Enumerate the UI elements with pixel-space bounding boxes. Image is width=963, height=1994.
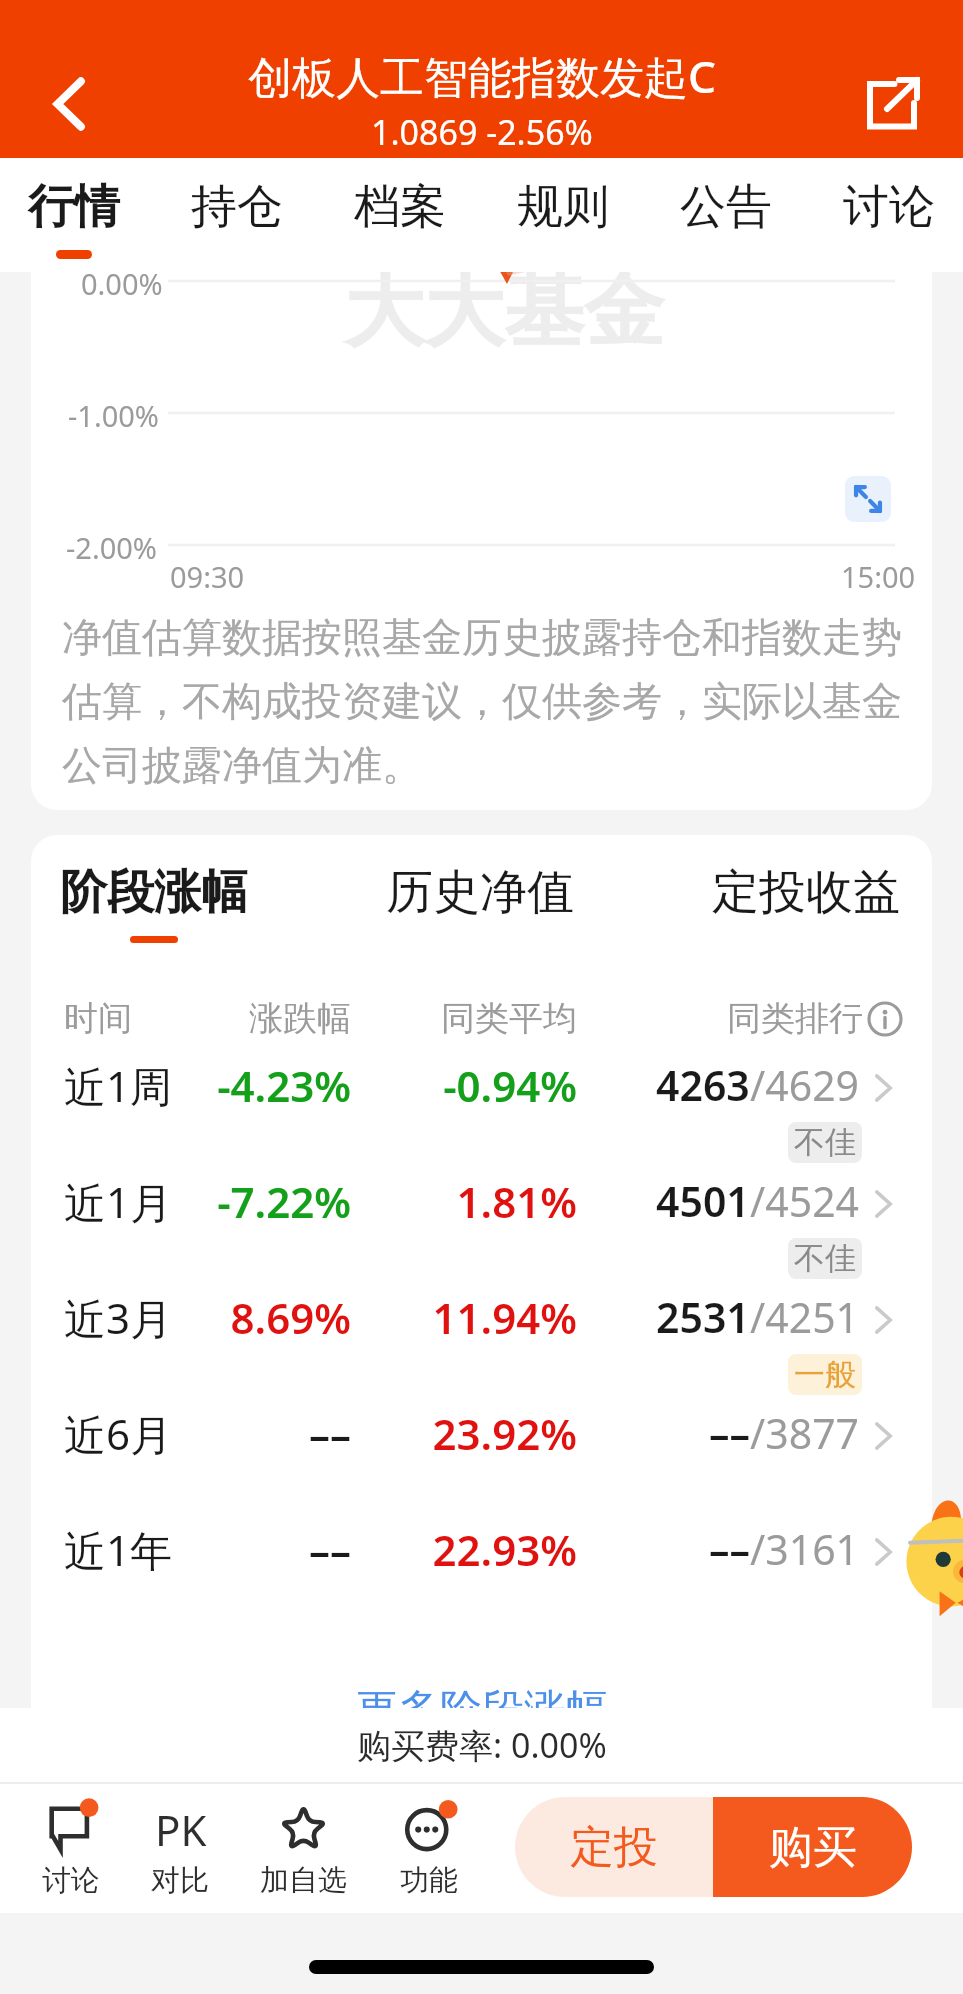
staticText: 净值估算数据按照基金历史披露持仓和指数走势估算，不构成投资建议，仅供参考，实际以… [62,612,902,791]
staticText: –– [31,1405,351,1462]
button[interactable]: 行情 [0,158,154,272]
staticText: 近6月 [64,1405,173,1462]
staticText: 更多阶段涨幅 [356,1684,608,1737]
button[interactable]: 公告 [646,158,806,272]
staticText: 讨论 [843,178,935,236]
button[interactable]: 档案 [320,158,480,272]
staticText: /3161 [750,1521,860,1577]
staticText: PK [155,1801,207,1856]
staticText: 8.69% [31,1289,351,1346]
button[interactable]: Back [21,56,117,152]
staticText: 近1月 [64,1173,173,1230]
button[interactable]: 购买 [713,1797,912,1897]
staticText: 4501 [656,1173,750,1229]
staticText: 持仓 [191,178,283,236]
staticText: 15:00 [841,557,916,596]
staticText: /3877 [750,1405,860,1461]
staticText: -2.00% [66,528,157,567]
button[interactable]: Share [847,59,937,149]
button[interactable]: 讨论 [809,158,963,272]
staticText: 定投 [570,1820,658,1875]
button[interactable]: 讨论 [11,1782,131,1913]
staticText: 0.00% [81,272,163,303]
staticText: 1.81% [31,1173,577,1230]
staticText: 近1年 [64,1521,173,1578]
staticText: 讨论 [42,1862,100,1899]
staticText: 不佳 [794,1123,856,1162]
staticText: 行情 [28,178,120,236]
staticText: 同类排行 [727,997,863,1040]
staticText: 创板人工智能指数发起C [248,46,716,106]
staticText: 23.92% [31,1405,577,1462]
staticText: 规则 [517,178,609,236]
button[interactable]: 持仓 [157,158,317,272]
button[interactable]: 近1周 [31,1045,932,1161]
staticText: 涨跌幅 [31,997,351,1040]
button[interactable]: 阶段涨幅 [44,863,264,943]
staticText: 09:30 [170,557,245,596]
staticText: 购买 [769,1820,857,1875]
staticText: 1.0869 -2.56% [371,109,593,155]
staticText: 2531 [656,1289,750,1345]
staticText: 4263 [656,1057,750,1113]
button[interactable]: 加自选 [243,1782,363,1913]
staticText: 档案 [354,178,446,236]
staticText: –– [709,1405,750,1461]
button[interactable]: 定投收益 [696,863,916,943]
staticText: 加自选 [260,1862,347,1899]
staticText: -1.00% [68,396,159,435]
staticText: –– [31,1521,351,1578]
staticText: /4251 [750,1289,860,1345]
button[interactable]: 近3月 [31,1277,932,1393]
staticText: 一般 [794,1355,856,1394]
staticText: 大大基金 [344,272,664,362]
button[interactable]: 更多阶段涨幅 [31,1684,932,1737]
staticText: –– [709,1521,750,1577]
staticText: 阶段涨幅 [60,863,248,922]
button[interactable]: Assistant [893,1500,963,1612]
staticText: 不佳 [794,1239,856,1278]
staticText: 11.94% [31,1289,577,1346]
staticText: 近3月 [64,1289,173,1346]
staticText: 对比 [151,1862,209,1899]
button[interactable]: 历史净值 [370,863,590,943]
staticText: 同类平均 [31,997,577,1040]
button[interactable]: 近1年 [31,1509,932,1625]
button[interactable]: PK [120,1782,240,1913]
staticText: 时间 [64,997,132,1040]
staticText: 历史净值 [386,863,574,922]
button[interactable]: 近1月 [31,1161,932,1277]
staticText: 公告 [680,178,772,236]
staticText: 购买费率: 0.00% [357,1722,607,1768]
button[interactable]: 规则 [483,158,643,272]
staticText: -0.94% [31,1057,577,1114]
button[interactable]: 近6月 [31,1393,932,1509]
staticText: 22.93% [31,1521,577,1578]
staticText: 近1周 [64,1057,173,1114]
staticText: /4524 [750,1173,860,1229]
button[interactable]: Expand chart [845,476,891,522]
staticText: -4.23% [31,1057,351,1114]
button[interactable]: 定投 [515,1797,713,1897]
button[interactable]: 功能 [369,1782,489,1913]
staticText: 功能 [400,1862,458,1899]
staticText: /4629 [750,1057,860,1113]
staticText: -7.22% [31,1173,351,1230]
staticText: 定投收益 [712,863,900,922]
